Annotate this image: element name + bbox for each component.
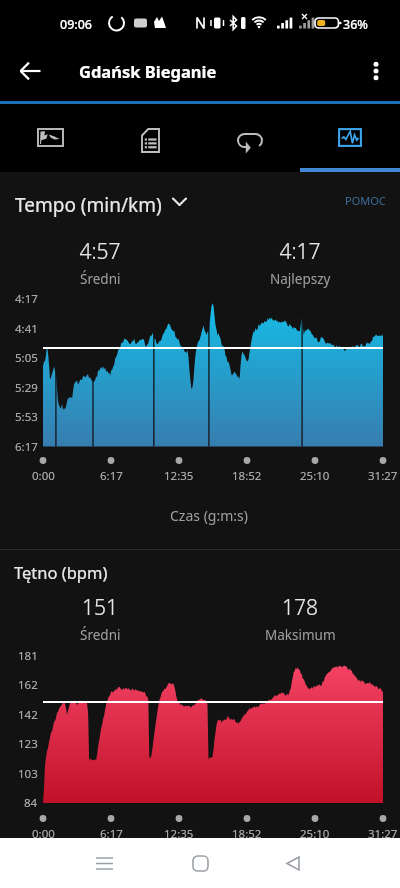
staticText: 4:41: [15, 321, 38, 337]
button[interactable]: Details tab: [100, 104, 200, 172]
staticText: Tempo (min/km): [15, 192, 162, 218]
staticText: 5:05: [15, 350, 38, 366]
staticText: 25:10: [300, 468, 330, 484]
staticText: Gdańsk Bieganie: [79, 60, 217, 82]
staticText: 0:00: [32, 468, 55, 484]
staticText: Czas (g:m:s): [170, 506, 248, 525]
staticText: 162: [18, 677, 38, 693]
button[interactable]: Home: [176, 838, 224, 888]
staticText: 123: [18, 736, 38, 752]
button[interactable]: Laps tab: [200, 104, 300, 172]
button[interactable]: More options: [352, 40, 400, 101]
staticText: 181: [18, 648, 38, 664]
staticText: 31:27: [368, 826, 398, 842]
button[interactable]: Back: [269, 838, 317, 888]
staticText: Najlepszy: [270, 270, 331, 288]
staticText: 4:17: [279, 237, 321, 266]
staticText: 18:52: [232, 826, 262, 842]
staticText: 6:17: [15, 439, 38, 455]
staticText: 4:17: [15, 291, 38, 307]
staticText: 4:57: [79, 237, 121, 266]
staticText: 31:27: [368, 468, 398, 484]
staticText: 18:52: [232, 468, 262, 484]
staticText: Maksimum: [265, 626, 336, 644]
staticText: 5:53: [15, 409, 38, 425]
staticText: 6:17: [100, 468, 123, 484]
staticText: Tętno (bpm): [14, 561, 108, 583]
staticText: 84: [24, 795, 38, 811]
staticText: 5:29: [15, 380, 38, 396]
staticText: 178: [282, 593, 318, 622]
staticText: 0:00: [32, 826, 55, 842]
staticText: 09:06: [60, 16, 93, 33]
staticText: 142: [18, 707, 38, 723]
button[interactable]: Back: [0, 40, 60, 101]
button[interactable]: POMOC: [337, 187, 394, 214]
staticText: Średni: [80, 626, 121, 644]
staticText: 6:17: [100, 826, 123, 842]
staticText: 12:35: [164, 468, 194, 484]
button[interactable]: Recent apps: [80, 838, 128, 888]
staticText: POMOC: [345, 193, 386, 208]
button[interactable]: Change metric: [165, 187, 193, 215]
staticText: Średni: [80, 270, 121, 288]
button[interactable]: Map tab: [0, 104, 100, 172]
staticText: 151: [82, 593, 118, 622]
staticText: 25:10: [300, 826, 330, 842]
staticText: 103: [18, 766, 38, 782]
button[interactable]: Charts tab: [300, 104, 400, 172]
staticText: 36%: [343, 16, 368, 33]
staticText: 12:35: [164, 826, 194, 842]
